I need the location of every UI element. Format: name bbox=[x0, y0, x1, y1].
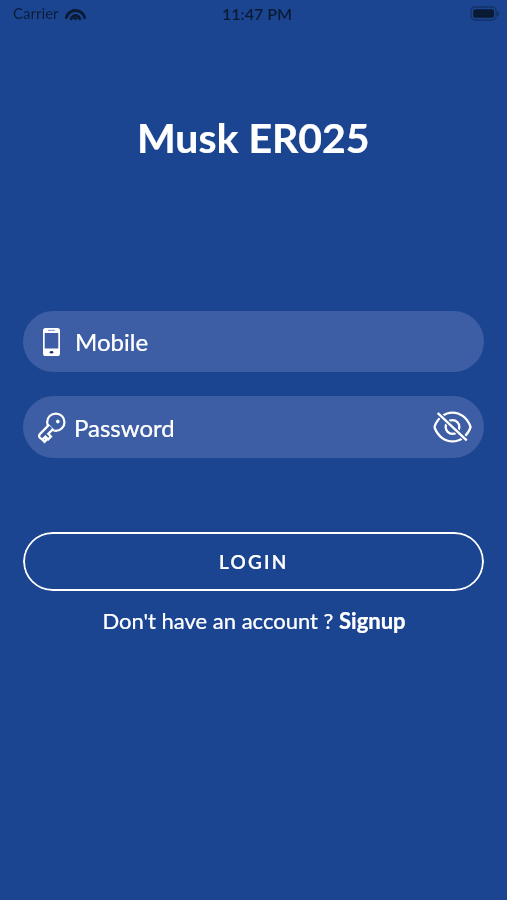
staticText: Carrier bbox=[13, 4, 59, 22]
button[interactable]: Mobile bbox=[23, 311, 484, 372]
staticText: Password bbox=[74, 413, 175, 442]
button[interactable]: Show password bbox=[432, 407, 472, 447]
staticText: Musk ER025 bbox=[137, 113, 370, 162]
button[interactable]: Don't have an account ? Signup bbox=[102, 607, 406, 633]
button[interactable]: Password bbox=[23, 396, 484, 458]
staticText: 11:47 PM bbox=[222, 4, 293, 23]
staticText: Mobile bbox=[75, 327, 149, 356]
button[interactable]: LOGIN bbox=[23, 532, 484, 591]
staticText: LOGIN bbox=[219, 550, 289, 573]
